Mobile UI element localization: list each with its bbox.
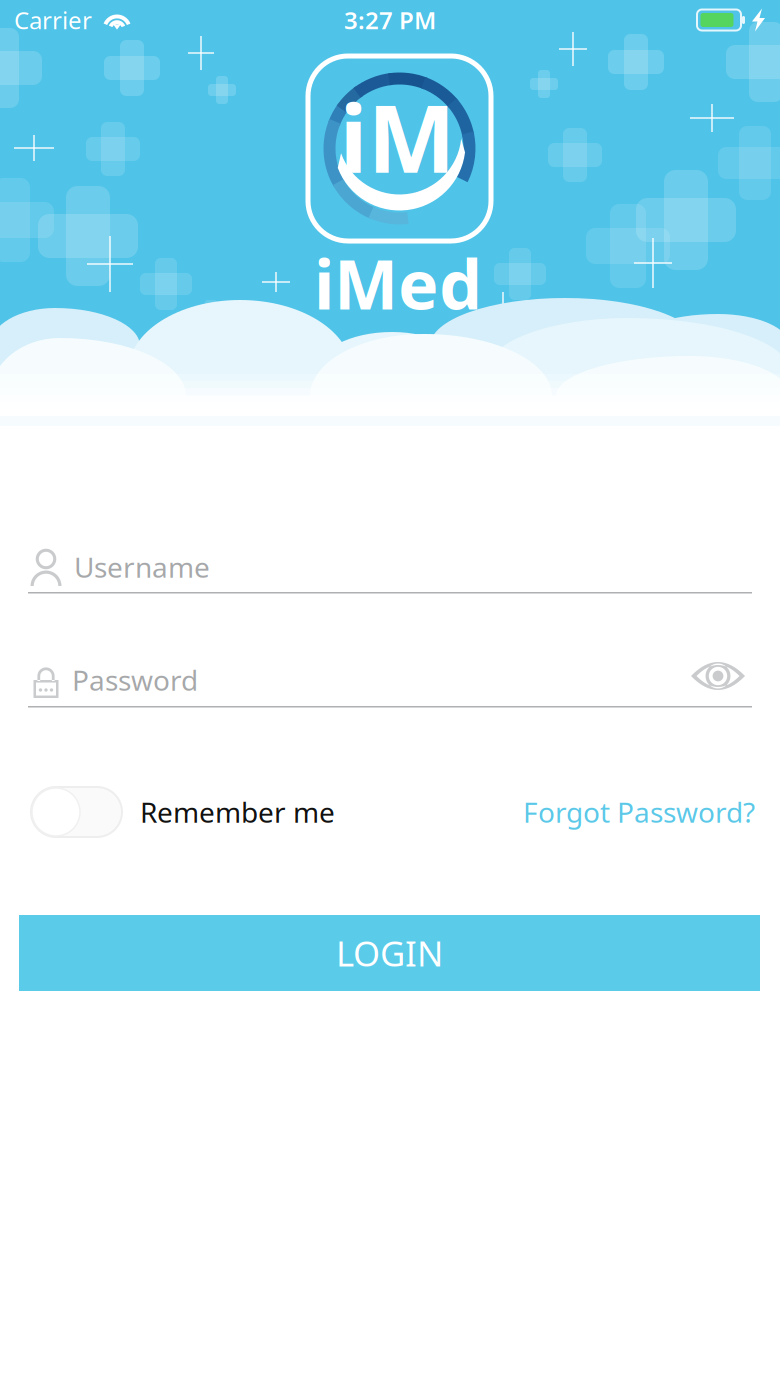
button[interactable]: LOGIN — [19, 915, 760, 991]
button[interactable]: Forgot Password? — [523, 782, 755, 842]
button[interactable]: Show password — [678, 646, 758, 706]
staticText: Remember me — [140, 793, 335, 831]
staticText: iM — [339, 74, 455, 198]
staticText: LOGIN — [336, 930, 443, 976]
staticText: iMed — [314, 238, 482, 328]
staticText: Username — [74, 548, 210, 586]
staticText: Password — [72, 661, 198, 699]
staticText: 3:27 PM — [344, 4, 436, 36]
staticText: Forgot Password? — [523, 793, 755, 831]
staticText: Carrier — [14, 4, 92, 36]
button[interactable]: Remember me — [31, 782, 335, 842]
